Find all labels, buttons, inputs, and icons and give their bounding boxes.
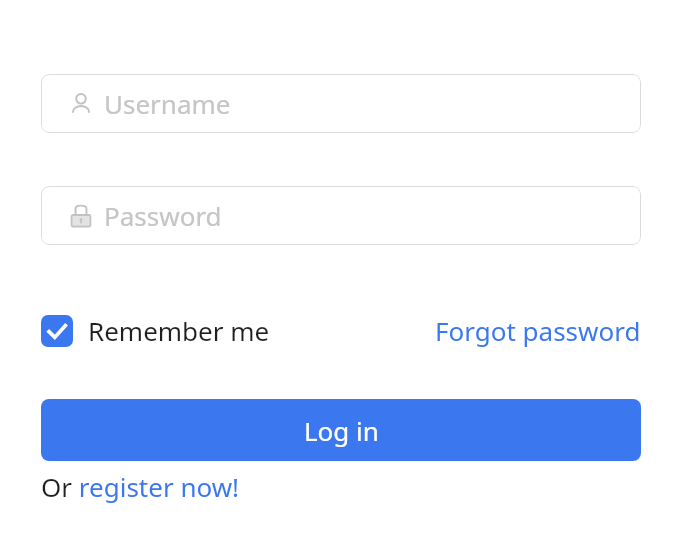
staticText: Remember me xyxy=(88,313,270,348)
other: Username xyxy=(68,91,94,117)
staticText: Username xyxy=(104,86,231,121)
staticText: Forgot password xyxy=(435,313,641,348)
button[interactable]: Password xyxy=(41,186,641,245)
button[interactable]: Or register now! xyxy=(41,469,240,504)
button[interactable]: Log in xyxy=(41,399,641,461)
staticText: Password xyxy=(104,198,222,233)
staticText: Log in xyxy=(304,413,379,448)
other: Password xyxy=(68,203,94,229)
button[interactable]: Remember me xyxy=(41,311,270,350)
button[interactable]: Username xyxy=(41,74,641,133)
button[interactable]: Forgot password xyxy=(435,311,641,350)
staticText: Or register now! xyxy=(41,469,240,504)
